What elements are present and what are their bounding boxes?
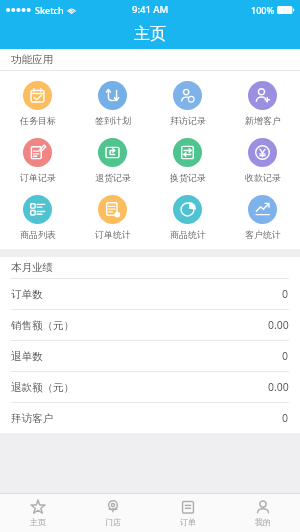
staticText: 门店 (105, 517, 121, 527)
staticText: 任务目标 (20, 115, 56, 126)
staticText: 主页 (30, 517, 46, 527)
button[interactable]: 门店 (75, 494, 150, 532)
staticText: 0.00 (268, 380, 289, 394)
staticText: 拜访客户 (11, 412, 53, 425)
button[interactable]: 收款记录 (225, 132, 300, 189)
staticText: 订单 (180, 517, 196, 527)
staticText: 换货记录 (170, 172, 206, 183)
button[interactable]: 订单 (150, 494, 225, 532)
button[interactable]: 退单数 (0, 341, 300, 371)
staticText: 我的 (255, 517, 271, 527)
button[interactable]: 新增客户 (225, 75, 300, 132)
staticText: 商品列表 (20, 229, 56, 240)
staticText: 订单统计 (95, 229, 131, 240)
staticText: 本月业绩 (11, 261, 53, 274)
staticText: 退单数 (11, 350, 43, 363)
button[interactable]: 拜访客户 (0, 403, 300, 433)
button[interactable]: 退货记录 (75, 132, 150, 189)
button[interactable]: 我的 (225, 494, 300, 532)
staticText: 商品统计 (170, 229, 206, 240)
button[interactable]: 订单统计 (75, 189, 150, 246)
staticText: 9:41 AM (132, 3, 169, 16)
button[interactable]: 商品统计 (150, 189, 225, 246)
staticText: 退货记录 (95, 172, 131, 183)
button[interactable]: 退款额（元） (0, 372, 300, 402)
staticText: 新增客户 (245, 115, 281, 126)
button[interactable]: 主页 (0, 494, 75, 532)
staticText: 订单记录 (20, 172, 56, 183)
staticText: 0 (282, 411, 289, 425)
staticText: 拜访记录 (170, 115, 206, 126)
button[interactable]: 任务目标 (0, 75, 75, 132)
button[interactable]: 商品列表 (0, 189, 75, 246)
button[interactable]: 订单数 (0, 279, 300, 309)
staticText: 收款记录 (245, 172, 281, 183)
button[interactable]: 换货记录 (150, 132, 225, 189)
staticText: Sketch (35, 4, 64, 16)
staticText: 100% (251, 4, 275, 16)
staticText: 功能应用 (11, 53, 53, 66)
staticText: 退款额（元） (11, 381, 74, 394)
staticText: 销售额（元） (11, 319, 74, 332)
staticText: 0 (282, 287, 289, 301)
staticText: 订单数 (11, 288, 43, 301)
button[interactable]: 订单记录 (0, 132, 75, 189)
button[interactable]: 客户统计 (225, 189, 300, 246)
button[interactable]: 拜访记录 (150, 75, 225, 132)
button[interactable]: 销售额（元） (0, 310, 300, 340)
button[interactable]: 签到计划 (75, 75, 150, 132)
staticText: 0 (282, 349, 289, 363)
staticText: 签到计划 (95, 115, 131, 126)
staticText: 主页 (134, 24, 166, 44)
staticText: 0.00 (268, 318, 289, 332)
staticText: 客户统计 (245, 229, 281, 240)
